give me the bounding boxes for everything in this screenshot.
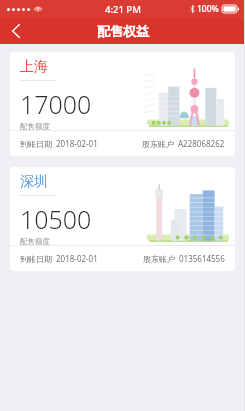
button[interactable]: 上海 xyxy=(10,52,235,156)
staticText: 上海 xyxy=(20,58,48,76)
staticText: 2018-02-01 xyxy=(56,253,98,264)
staticText: 深圳 xyxy=(20,173,48,191)
staticText: 股东账户 xyxy=(142,139,174,149)
staticText: 配售额度 xyxy=(20,122,50,130)
staticText: A228068262 xyxy=(178,138,225,149)
staticText: 配售权益 xyxy=(97,23,149,39)
staticText: 100% xyxy=(197,3,219,15)
staticText: 到账日期 xyxy=(20,254,52,264)
staticText: 10500 xyxy=(20,202,92,236)
staticText: 4:21 PM xyxy=(105,3,141,16)
staticText: 配售额度 xyxy=(20,237,50,245)
button[interactable]: 返回 xyxy=(0,18,32,44)
staticText: 股东账户 xyxy=(143,254,175,264)
staticText: 0135614556 xyxy=(179,253,225,264)
button[interactable]: 深圳 xyxy=(10,167,235,271)
staticText: 到账日期 xyxy=(20,139,52,149)
staticText: 17000 xyxy=(20,87,92,121)
staticText: 2018-02-01 xyxy=(56,138,98,149)
